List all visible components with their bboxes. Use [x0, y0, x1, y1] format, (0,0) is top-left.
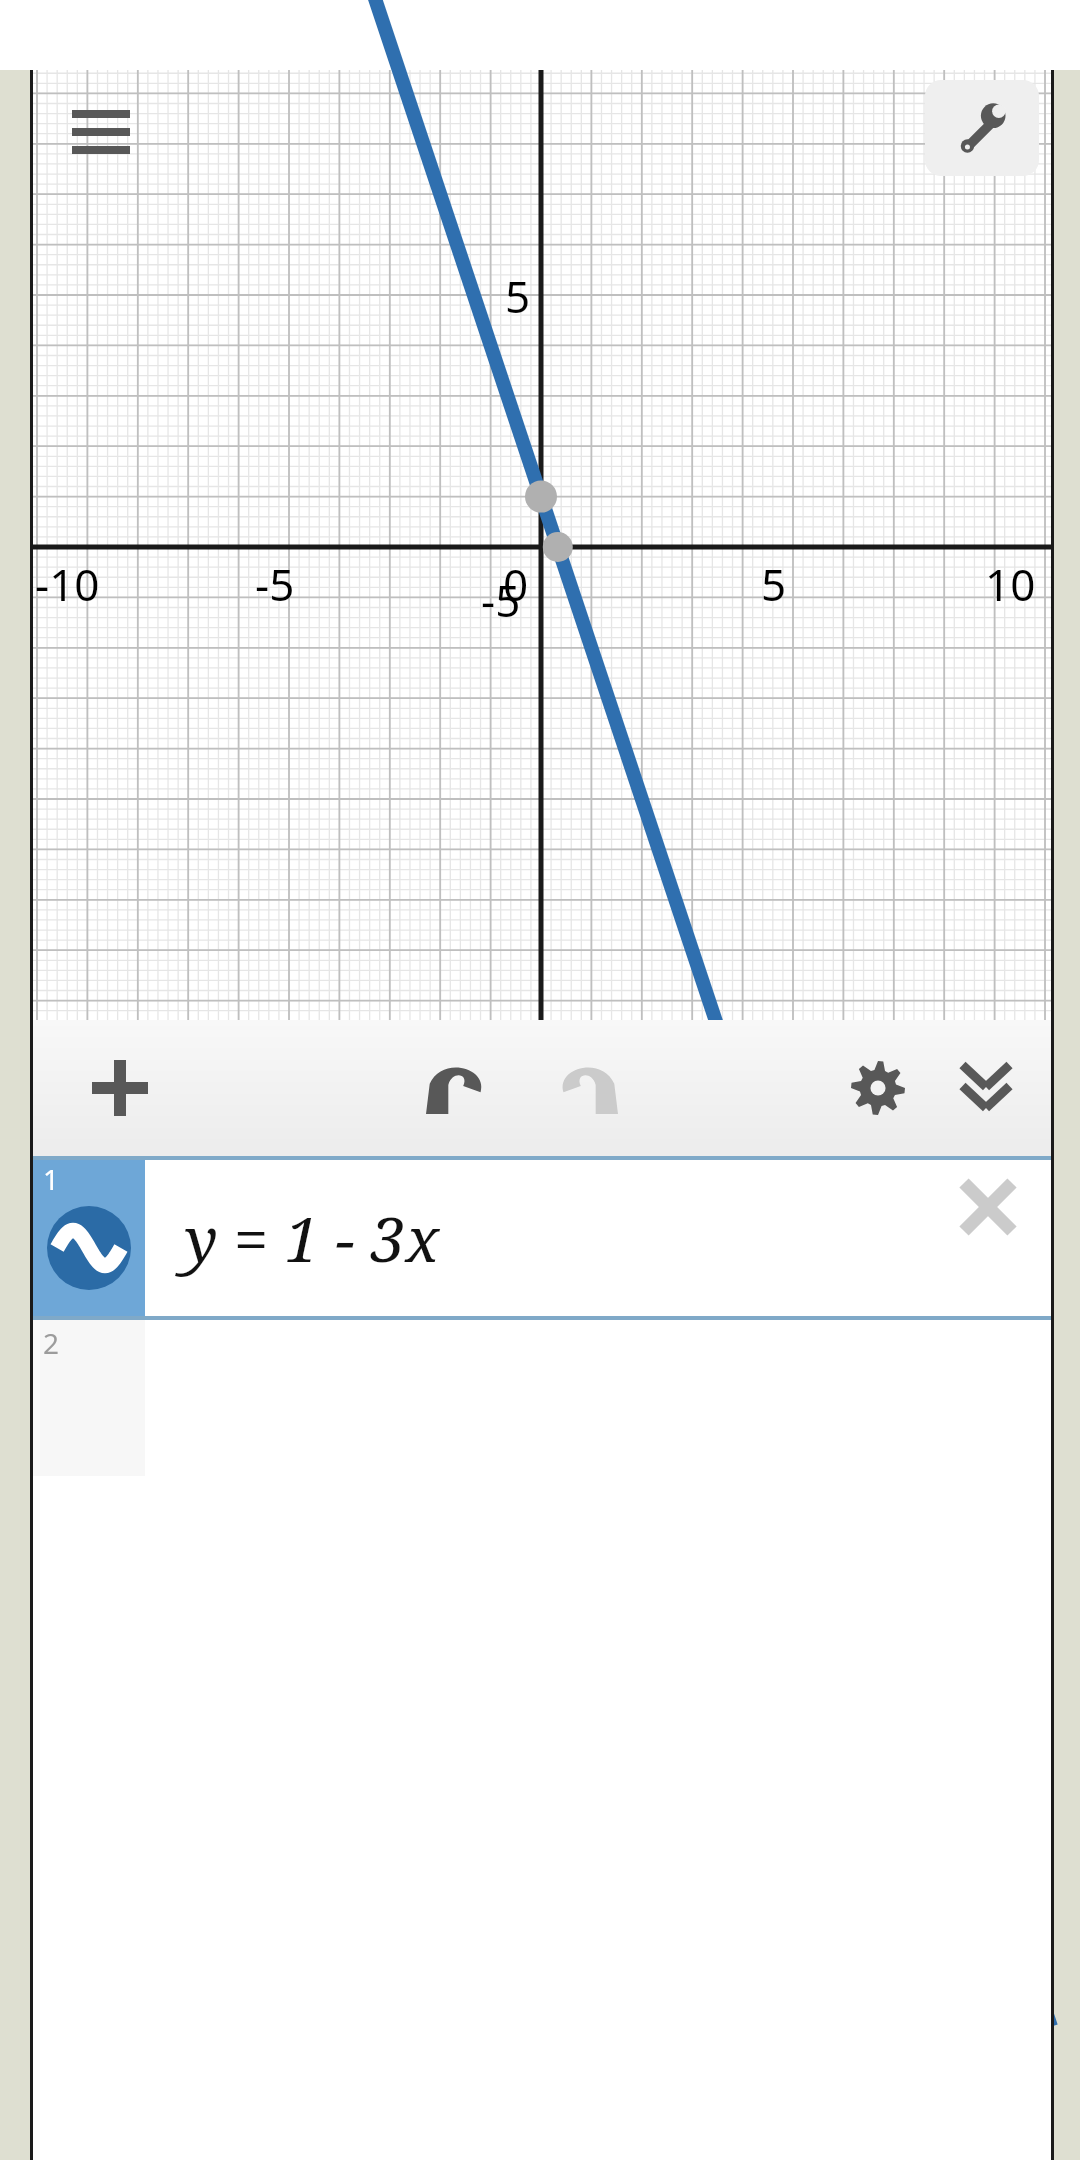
staticText: y = 1 − 3x: [185, 1196, 440, 1280]
button[interactable]: Add expression: [75, 1043, 165, 1133]
staticText: 5: [505, 266, 531, 326]
staticText: 2: [43, 1324, 60, 1362]
staticText: 1: [43, 1160, 60, 1198]
button[interactable]: y = 1 − 3x: [145, 1160, 1051, 1316]
staticText: 5: [761, 554, 787, 614]
button[interactable]: Graph settings: [925, 80, 1039, 176]
button[interactable]: Menu: [53, 84, 149, 180]
button[interactable]: Undo: [412, 1043, 502, 1133]
button[interactable]: Settings: [833, 1043, 923, 1133]
button[interactable]: Toggle plot 1: [33, 1160, 145, 1316]
staticText: -5: [481, 570, 521, 630]
staticText: -10: [35, 554, 100, 614]
button[interactable]: Delete expression: [949, 1168, 1027, 1246]
staticText: -5: [255, 554, 295, 614]
button[interactable]: 2: [33, 1320, 1051, 1476]
button[interactable]: Collapse list: [941, 1043, 1031, 1133]
button[interactable]: Redo: [542, 1043, 632, 1133]
staticText: 0: [503, 554, 529, 614]
staticText: 10: [985, 554, 1036, 614]
